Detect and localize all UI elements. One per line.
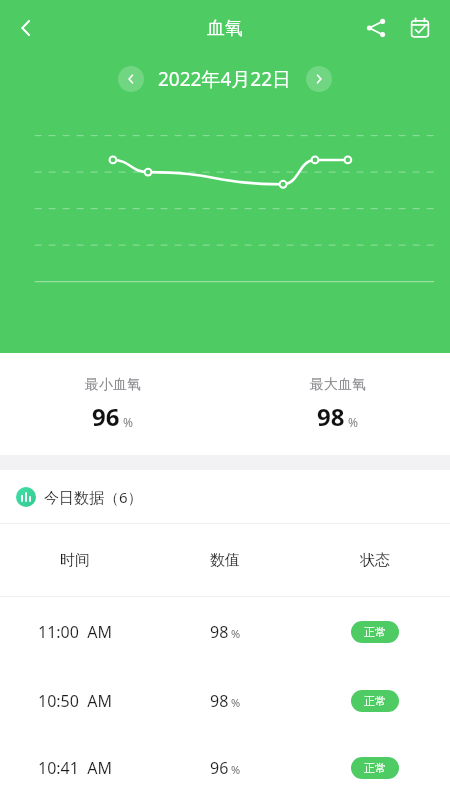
button[interactable]: 正常 bbox=[364, 761, 386, 775]
button[interactable]: 正常 bbox=[364, 694, 386, 708]
staticText: 10:41 AM bbox=[38, 757, 112, 779]
button[interactable]: Calendar bbox=[398, 6, 442, 50]
button[interactable]: Share bbox=[354, 6, 398, 50]
button[interactable]: 正常 bbox=[364, 625, 386, 639]
staticText: 10:50 AM bbox=[38, 690, 112, 712]
button[interactable]: Previous day bbox=[118, 66, 144, 92]
staticText: 今日数据（6） bbox=[44, 487, 143, 507]
staticText: 11:00 AM bbox=[38, 621, 112, 643]
staticText: 最小血氧 bbox=[85, 376, 141, 394]
staticText: 98 bbox=[317, 400, 345, 433]
staticText: 正常 bbox=[364, 694, 386, 708]
staticText: 数值 bbox=[210, 551, 240, 570]
staticText: % bbox=[348, 414, 358, 430]
staticText: 98 bbox=[210, 690, 229, 712]
button[interactable]: 10:50 AM bbox=[0, 666, 450, 735]
button[interactable]: Next day bbox=[306, 66, 332, 92]
button[interactable]: 时间 bbox=[0, 524, 450, 596]
staticText: 96 bbox=[92, 400, 120, 433]
button[interactable]: 11:00 AM bbox=[0, 597, 450, 666]
staticText: % bbox=[231, 695, 241, 710]
staticText: 96 bbox=[210, 757, 229, 779]
button[interactable]: 最大血氧 bbox=[225, 376, 450, 433]
staticText: % bbox=[231, 626, 241, 641]
staticText: 正常 bbox=[364, 761, 386, 775]
button[interactable]: 最小血氧 bbox=[0, 376, 225, 433]
staticText: % bbox=[231, 762, 241, 777]
staticText: 98 bbox=[210, 621, 229, 643]
staticText: 2022年4月22日 bbox=[158, 66, 292, 92]
staticText: 时间 bbox=[60, 551, 90, 570]
staticText: % bbox=[123, 414, 133, 430]
staticText: 正常 bbox=[364, 625, 386, 639]
button[interactable]: 10:41 AM bbox=[0, 735, 450, 800]
button[interactable]: Back bbox=[4, 6, 48, 50]
staticText: 状态 bbox=[360, 551, 390, 570]
staticText: 最大血氧 bbox=[310, 376, 366, 394]
staticText: 血氧 bbox=[207, 17, 243, 40]
